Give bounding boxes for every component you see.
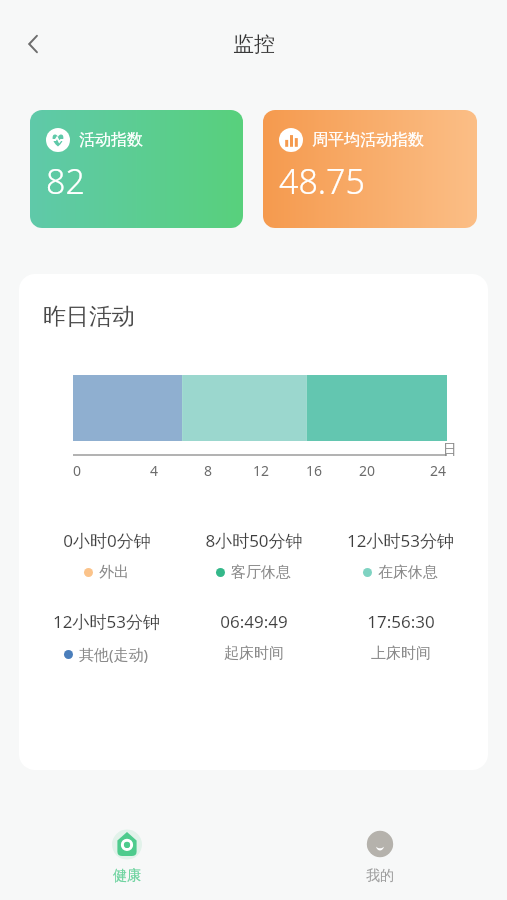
- staticText: 我的: [366, 867, 394, 885]
- staticText: 外出: [99, 563, 129, 582]
- button[interactable]: 健康: [0, 814, 253, 900]
- staticText: 昨日活动: [43, 302, 135, 331]
- staticText: 周平均活动指数: [312, 130, 424, 150]
- staticText: 17:56:30: [367, 610, 435, 633]
- staticText: 0: [73, 461, 82, 480]
- staticText: 8: [204, 461, 213, 480]
- button[interactable]: 我的: [253, 814, 507, 900]
- staticText: 12: [253, 461, 270, 480]
- staticText: 健康: [113, 867, 141, 885]
- staticText: 06:49:49: [220, 610, 288, 633]
- staticText: 日: [443, 441, 457, 459]
- staticText: 48.75: [279, 158, 365, 204]
- staticText: 在床休息: [378, 563, 438, 582]
- staticText: 16: [306, 461, 323, 480]
- staticText: 客厅休息: [231, 563, 291, 582]
- staticText: 12小时53分钟: [347, 529, 454, 552]
- staticText: 24: [430, 461, 447, 480]
- staticText: 4: [150, 461, 159, 480]
- button[interactable]: 周平均活动指数: [263, 110, 477, 228]
- staticText: 监控: [233, 31, 275, 57]
- staticText: 上床时间: [371, 644, 431, 663]
- staticText: 起床时间: [224, 644, 284, 663]
- staticText: 活动指数: [79, 130, 143, 150]
- staticText: 0小时0分钟: [63, 529, 151, 552]
- staticText: 20: [359, 461, 376, 480]
- staticText: 其他(走动): [79, 644, 149, 664]
- staticText: 8小时50分钟: [205, 529, 303, 552]
- staticText: 12小时53分钟: [53, 610, 160, 633]
- button[interactable]: Back: [10, 20, 58, 68]
- button[interactable]: 活动指数: [30, 110, 243, 228]
- staticText: 82: [46, 158, 85, 204]
